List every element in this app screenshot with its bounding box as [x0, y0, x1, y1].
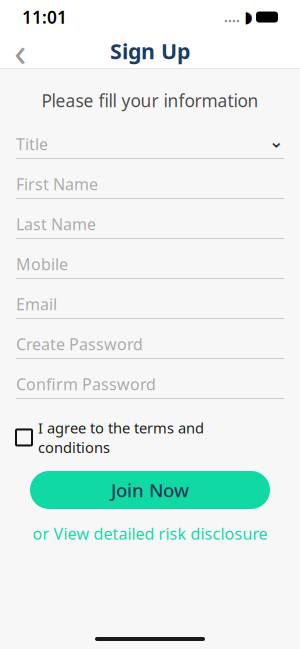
staticText: ....: [224, 8, 240, 26]
staticText: Email: [16, 293, 57, 315]
staticText: Title: [16, 133, 48, 155]
staticText: Create Password: [16, 333, 143, 355]
button[interactable]: Back: [0, 34, 40, 68]
staticText: Mobile: [16, 253, 68, 275]
staticText: Join Now: [111, 478, 189, 502]
staticText: Please fill your information: [41, 89, 258, 112]
staticText: Last Name: [16, 213, 96, 235]
staticText: Sign Up: [110, 37, 190, 65]
staticText: ◗: [244, 8, 252, 26]
staticText: I agree to the terms and conditions: [38, 418, 204, 457]
staticText: or View detailed risk disclosure: [32, 523, 267, 544]
staticText: ‹: [14, 24, 26, 77]
staticText: 11:01: [22, 5, 67, 28]
button[interactable]: or View detailed risk disclosure: [16, 517, 284, 550]
staticText: First Name: [16, 173, 98, 195]
button[interactable]: I agree to the terms and conditions: [16, 414, 284, 461]
staticText: ⌄: [269, 132, 284, 151]
button[interactable]: Join Now: [30, 471, 270, 509]
staticText: Confirm Password: [16, 373, 156, 395]
